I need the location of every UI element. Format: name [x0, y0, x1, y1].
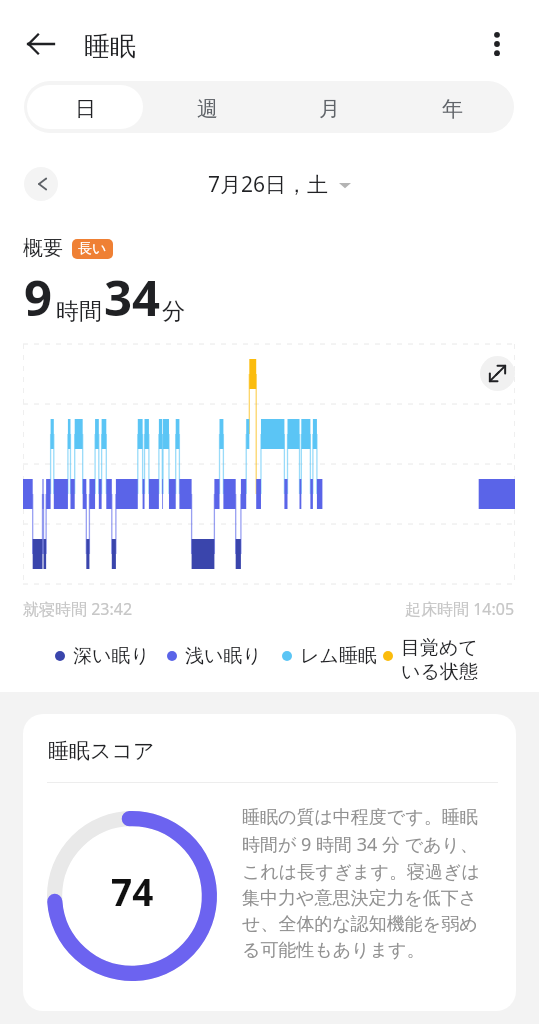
button[interactable]: 7月26日，土: [208, 170, 352, 199]
staticText: 概要: [23, 236, 63, 261]
staticText: 9: [24, 264, 53, 331]
staticText: 34: [104, 264, 161, 331]
staticText: 睡眠の質は中程度です。睡眠時間が 9 時間 34 分 であり、これは長すぎます。…: [242, 806, 494, 961]
staticText: 起床時間 14:05: [405, 598, 515, 620]
staticText: 長い: [78, 240, 107, 258]
button[interactable]: 浅い眠り: [167, 644, 262, 668]
staticText: 就寝時間 23:42: [23, 598, 133, 620]
button[interactable]: 深い眠り: [55, 644, 150, 668]
staticText: 7月26日，土: [208, 170, 329, 199]
staticText: いる状態: [401, 660, 478, 684]
staticText: 年: [442, 96, 463, 122]
button[interactable]: Back: [17, 20, 65, 68]
staticText: 睡眠スコア: [48, 738, 155, 764]
staticText: 月: [319, 96, 340, 122]
button[interactable]: More options: [473, 20, 521, 68]
staticText: 74: [111, 866, 154, 916]
staticText: 分: [162, 297, 185, 326]
staticText: 目覚めて: [401, 636, 478, 660]
button[interactable]: 月: [271, 85, 388, 129]
staticText: 睡眠: [84, 30, 136, 63]
staticText: 時間: [56, 297, 102, 326]
button[interactable]: Previous day: [24, 167, 58, 201]
button[interactable]: 週: [149, 85, 265, 129]
staticText: 浅い眠り: [185, 644, 262, 668]
button[interactable]: Expand chart: [480, 356, 515, 391]
button[interactable]: 年: [394, 85, 511, 129]
button[interactable]: 日: [27, 85, 143, 129]
staticText: 週: [197, 96, 218, 122]
button[interactable]: 目覚めて: [383, 636, 478, 684]
staticText: レム睡眠: [300, 644, 377, 668]
button[interactable]: レム睡眠: [282, 644, 377, 668]
staticText: 日: [75, 96, 96, 122]
staticText: 深い眠り: [73, 644, 150, 668]
